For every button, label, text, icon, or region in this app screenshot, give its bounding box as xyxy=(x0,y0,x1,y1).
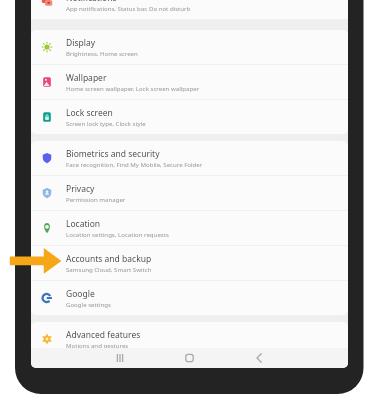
button[interactable]: Notifications xyxy=(31,0,348,19)
staticText: Lock screen xyxy=(66,107,113,119)
button[interactable]: Recent apps xyxy=(111,348,129,368)
staticText: Privacy xyxy=(66,183,95,195)
button[interactable]: Location xyxy=(31,211,348,245)
staticText: Notifications xyxy=(66,0,117,4)
staticText: Location settings, Location requests xyxy=(66,230,169,238)
staticText: Permission manager xyxy=(66,195,126,203)
button[interactable]: Advanced features xyxy=(31,322,348,356)
button[interactable]: Accounts and backup xyxy=(31,246,348,280)
button[interactable]: Privacy xyxy=(31,176,348,210)
staticText: Samsung Cloud, Smart Switch xyxy=(66,265,152,273)
staticText: Home screen wallpaper, Lock screen wallp… xyxy=(66,84,200,92)
button[interactable]: Biometrics and security xyxy=(31,141,348,175)
staticText: Motions and gestures xyxy=(66,341,129,349)
staticText: Accounts and backup xyxy=(66,253,152,265)
staticText: Display xyxy=(66,37,95,49)
button[interactable]: Display xyxy=(31,30,348,64)
staticText: Location xyxy=(66,218,101,230)
staticText: Face recognition, Find My Mobile, Secure… xyxy=(66,160,203,168)
button[interactable]: Wallpaper xyxy=(31,65,348,99)
button[interactable]: Google xyxy=(31,281,348,315)
staticText: Brightness, Home screen xyxy=(66,49,138,57)
button[interactable]: Back xyxy=(250,348,268,368)
staticText: Advanced features xyxy=(66,329,141,341)
staticText: App notifications, Status bar, Do not di… xyxy=(66,4,191,12)
staticText: Screen lock type, Clock style xyxy=(66,119,146,127)
staticText: Biometrics and security xyxy=(66,148,160,160)
staticText: Google xyxy=(66,288,95,300)
button[interactable]: Lock screen xyxy=(31,100,348,134)
staticText: Wallpaper xyxy=(66,72,107,84)
staticText: Google settings xyxy=(66,300,111,308)
button[interactable]: Home xyxy=(180,348,199,368)
